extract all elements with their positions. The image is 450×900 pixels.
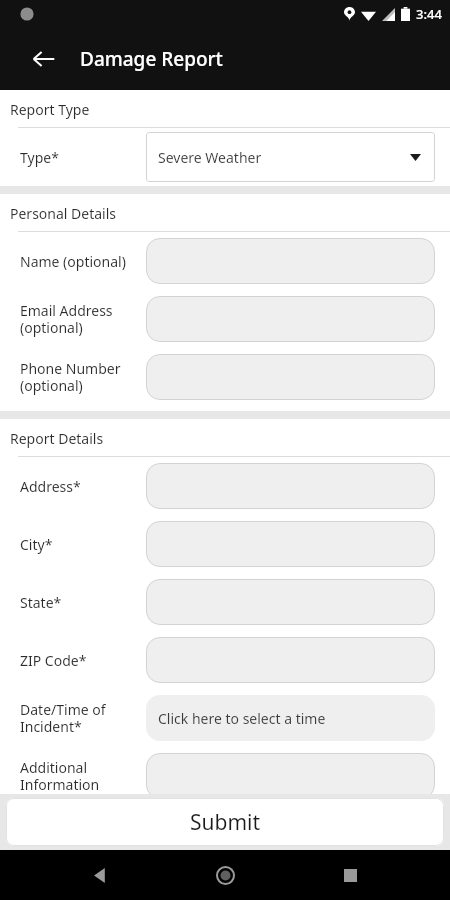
staticText: Severe Weather bbox=[158, 148, 262, 167]
staticText: Click here to select a time bbox=[158, 709, 326, 728]
staticText: Date/Time of Incident* bbox=[20, 700, 146, 736]
staticText: City* bbox=[20, 535, 146, 554]
staticText: Additional Information bbox=[20, 758, 146, 794]
button[interactable]: Recents bbox=[326, 851, 374, 899]
button[interactable]: Phone Number (optional) bbox=[0, 348, 450, 406]
staticText: Report Type bbox=[10, 100, 90, 119]
button[interactable]: Type* bbox=[0, 128, 450, 186]
staticText: Name (optional) bbox=[20, 252, 146, 271]
staticText: Submit bbox=[190, 808, 261, 837]
staticText: Type* bbox=[20, 148, 146, 167]
button[interactable]: ZIP Code* bbox=[0, 631, 450, 689]
staticText: Damage Report bbox=[80, 46, 223, 72]
staticText: Personal Details bbox=[10, 204, 117, 223]
button[interactable]: Home bbox=[201, 851, 249, 899]
button[interactable]: City* bbox=[0, 515, 450, 573]
button[interactable]: Submit bbox=[6, 798, 444, 846]
staticText: Email Address (optional) bbox=[20, 301, 146, 337]
button[interactable]: State* bbox=[0, 573, 450, 631]
button[interactable]: Date/Time of Incident* bbox=[0, 689, 450, 747]
button[interactable]: Back bbox=[22, 37, 66, 81]
staticText: ZIP Code* bbox=[20, 651, 146, 670]
staticText: Address* bbox=[20, 477, 146, 496]
button[interactable]: Back bbox=[77, 851, 125, 899]
button[interactable]: Additional Information bbox=[0, 747, 450, 805]
staticText: 3:44 bbox=[416, 5, 442, 23]
staticText: Report Details bbox=[10, 429, 104, 448]
staticText: State* bbox=[20, 593, 146, 612]
staticText: Phone Number (optional) bbox=[20, 359, 146, 395]
button[interactable]: Email Address (optional) bbox=[0, 290, 450, 348]
button[interactable]: Address* bbox=[0, 457, 450, 515]
button[interactable]: Name (optional) bbox=[0, 232, 450, 290]
